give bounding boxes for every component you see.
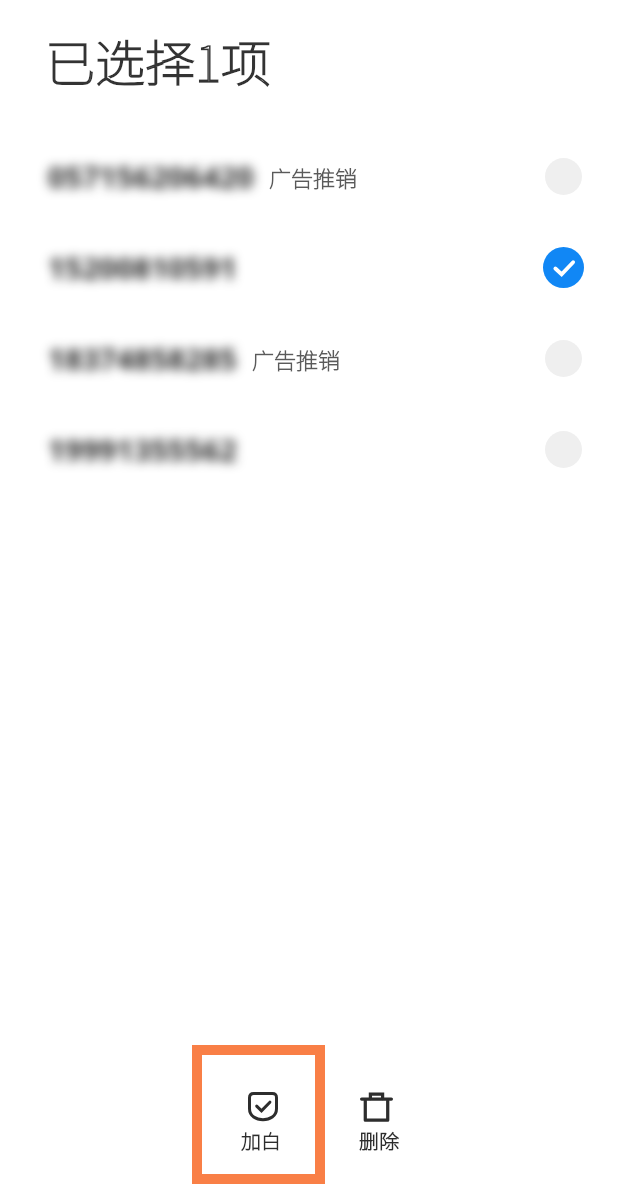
button[interactable]: 15200810591 [0,222,640,313]
button[interactable]: 057156206420 [0,131,640,222]
other: 删除 [360,1092,393,1122]
staticText: 15200810591 [48,248,238,287]
staticText: 广告推销 [269,161,358,193]
staticText: 删除 [359,1126,399,1155]
other: 加白 [248,1092,278,1122]
staticText: 已选择1项 [45,24,272,96]
staticText: 广告推销 [252,343,341,375]
button[interactable]: 18374858285 [0,313,640,404]
button[interactable]: 加白 [202,1055,315,1174]
button[interactable]: 19991355562 [0,404,640,495]
staticText: 057156206420 [48,157,255,196]
staticText: 19991355562 [48,430,238,469]
button[interactable]: 删除 [345,1085,411,1165]
staticText: 加白 [241,1126,281,1155]
staticText: 18374858285 [48,339,238,378]
